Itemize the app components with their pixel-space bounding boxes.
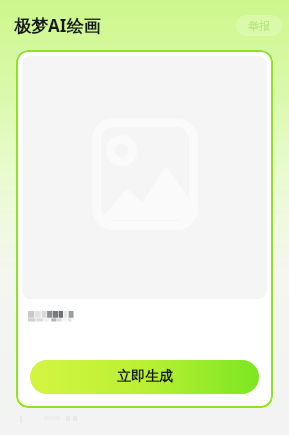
staticText: 立即生成	[117, 368, 173, 386]
staticText: 举报	[248, 19, 270, 33]
button[interactable]: 立即生成	[30, 360, 259, 394]
staticText: 极梦AI绘画	[14, 14, 101, 37]
button[interactable]: 举报	[236, 15, 282, 36]
